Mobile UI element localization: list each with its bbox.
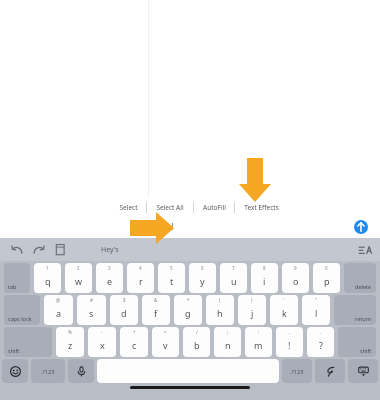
staticText: c xyxy=(132,339,137,351)
staticText: tab xyxy=(8,283,17,290)
staticText: shift xyxy=(360,347,372,354)
button[interactable]: Text Effects xyxy=(235,198,287,216)
button[interactable]: 7 xyxy=(220,263,247,293)
button[interactable]: 5 xyxy=(158,263,185,293)
button[interactable]: Select All xyxy=(147,198,193,216)
button[interactable]: # xyxy=(77,295,106,325)
button[interactable]: shift xyxy=(338,327,376,357)
button[interactable]: Select xyxy=(110,198,146,216)
button[interactable]: delete xyxy=(344,263,376,293)
button[interactable]: AutoFill xyxy=(194,198,234,216)
button[interactable]: ; xyxy=(214,327,241,357)
staticText: ! xyxy=(288,339,291,351)
staticText: p xyxy=(324,275,330,287)
staticText: : xyxy=(258,329,260,335)
staticText: .?123 xyxy=(41,368,55,375)
staticText: 8 xyxy=(263,265,266,271)
button[interactable]: .?123 xyxy=(31,359,65,383)
button[interactable]: Emoji xyxy=(2,359,28,383)
button[interactable]: .?123 xyxy=(282,359,312,383)
staticText: i xyxy=(263,275,266,287)
button[interactable]: & xyxy=(142,295,170,325)
button[interactable]: $ xyxy=(110,295,138,325)
staticText: 5 xyxy=(170,265,173,271)
staticText: r xyxy=(139,275,143,287)
button[interactable]: Hide keyboard xyxy=(348,359,378,383)
button[interactable]: 2 xyxy=(65,263,92,293)
staticText: 2 xyxy=(77,265,80,271)
staticText: 9 xyxy=(294,265,297,271)
button[interactable]: - xyxy=(88,327,116,357)
staticText: g xyxy=(185,307,191,319)
staticText: " xyxy=(315,297,317,303)
staticText: 0 xyxy=(325,265,328,271)
button[interactable]: Dictation xyxy=(68,359,94,383)
button[interactable]: return xyxy=(334,295,376,325)
staticText: ? xyxy=(319,339,323,351)
button[interactable]: Redo xyxy=(32,243,46,257)
button[interactable]: shift xyxy=(4,327,52,357)
staticText: m xyxy=(254,339,263,351)
staticText: k xyxy=(282,307,287,319)
button[interactable]: Paste xyxy=(54,243,67,256)
button[interactable]: Hey! xyxy=(148,216,350,236)
staticText: = xyxy=(164,329,167,335)
button[interactable]: tab xyxy=(4,263,30,293)
staticText: 4 xyxy=(139,265,142,271)
staticText: delete xyxy=(355,283,372,290)
button[interactable]: caps lock xyxy=(4,295,40,325)
staticText: caps lock xyxy=(8,315,32,322)
button[interactable]: @ xyxy=(44,295,73,325)
staticText: e xyxy=(107,275,113,287)
staticText: @ xyxy=(56,297,61,303)
staticText: ) xyxy=(251,297,253,303)
button[interactable]: 9 xyxy=(282,263,309,293)
button[interactable]: Format xyxy=(358,243,372,257)
button[interactable]: * xyxy=(174,295,202,325)
staticText: & xyxy=(154,297,158,303)
staticText: z xyxy=(68,339,73,351)
staticText: AutoFill xyxy=(203,203,226,212)
button[interactable]: + xyxy=(120,327,148,357)
button[interactable]: 3 xyxy=(96,263,123,293)
button[interactable]: Send xyxy=(354,220,368,234)
staticText: x xyxy=(100,339,105,351)
button[interactable]: : xyxy=(245,327,272,357)
button[interactable]: 0 xyxy=(313,263,340,293)
staticText: # xyxy=(90,297,93,303)
button[interactable]: 6 xyxy=(189,263,216,293)
staticText: ' xyxy=(283,297,285,303)
staticText: .?123 xyxy=(290,368,304,375)
button[interactable]: Handwriting xyxy=(315,359,345,383)
staticText: $ xyxy=(123,297,126,303)
staticText: + xyxy=(133,329,136,335)
staticText: / xyxy=(196,329,198,335)
staticText: . xyxy=(320,329,322,335)
button[interactable]: Undo xyxy=(10,243,24,257)
button[interactable]: , xyxy=(276,327,303,357)
button[interactable]: . xyxy=(307,327,334,357)
staticText: f xyxy=(154,307,158,319)
staticText: t xyxy=(170,275,174,287)
button[interactable]: ) xyxy=(238,295,266,325)
staticText: n xyxy=(225,339,231,351)
staticText: w xyxy=(75,275,83,287)
button[interactable]: ' xyxy=(270,295,298,325)
button[interactable]: " xyxy=(302,295,330,325)
staticText: o xyxy=(293,275,299,287)
staticText: v xyxy=(163,339,168,351)
button[interactable]: ( xyxy=(206,295,234,325)
button[interactable]: 8 xyxy=(251,263,278,293)
staticText: a xyxy=(56,307,62,319)
button[interactable]: 1 xyxy=(34,263,61,293)
staticText: q xyxy=(45,275,51,287)
button[interactable]: = xyxy=(152,327,179,357)
staticText: ; xyxy=(227,329,229,335)
staticText: y xyxy=(200,275,205,287)
button[interactable]: % xyxy=(56,327,84,357)
button[interactable]: / xyxy=(183,327,210,357)
staticText: b xyxy=(194,339,200,351)
staticText: Text Effects xyxy=(244,203,279,212)
button[interactable]: 4 xyxy=(127,263,154,293)
